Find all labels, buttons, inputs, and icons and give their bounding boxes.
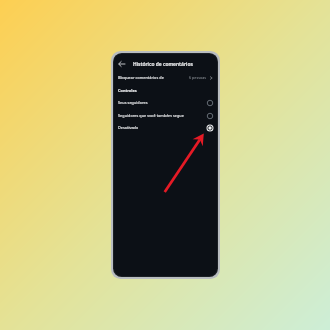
button[interactable]: Back <box>116 58 128 70</box>
button[interactable]: Desativado <box>114 122 217 133</box>
staticText: Seguidores que você também segue <box>118 113 184 118</box>
button[interactable]: Bloquear comentários de <box>114 72 217 83</box>
staticText: Controles <box>118 88 137 93</box>
staticText: Seus seguidores <box>118 100 148 105</box>
staticText: Desativado <box>118 125 139 130</box>
staticText: 6 pessoas <box>189 75 207 80</box>
button[interactable]: Seguidores que você também segue <box>114 110 217 121</box>
staticText: Bloquear comentários de <box>118 75 164 80</box>
staticText: Histórico de comentários <box>133 61 193 68</box>
button[interactable]: Seus seguidores <box>114 97 217 108</box>
